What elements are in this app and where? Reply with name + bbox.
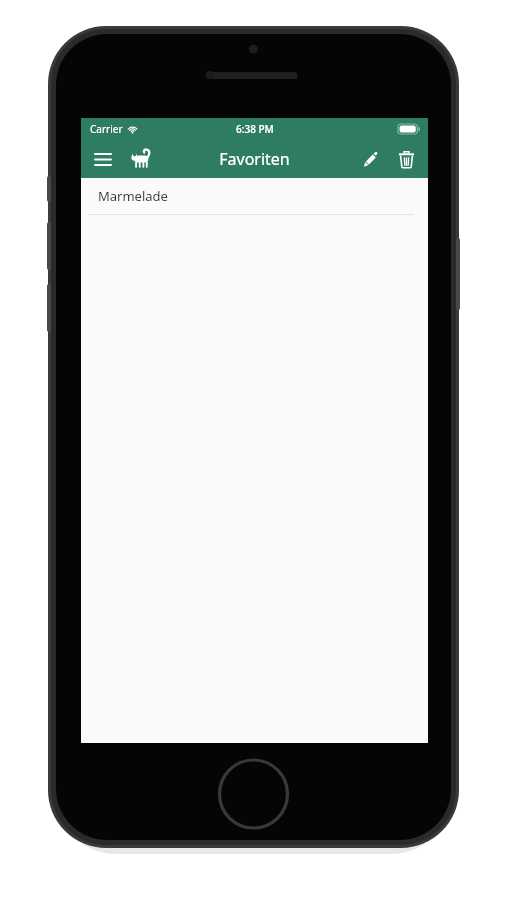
button[interactable]: Marmelade (81, 178, 428, 214)
button[interactable]: Pet (123, 141, 159, 177)
button[interactable]: Edit (352, 141, 388, 177)
button[interactable]: Menu (85, 141, 121, 177)
button[interactable]: Delete (388, 141, 424, 177)
staticText: Carrier (90, 122, 123, 136)
staticText: 6:38 PM (236, 122, 274, 136)
staticText: Marmelade (98, 187, 168, 205)
staticText: Favoriten (219, 148, 290, 170)
